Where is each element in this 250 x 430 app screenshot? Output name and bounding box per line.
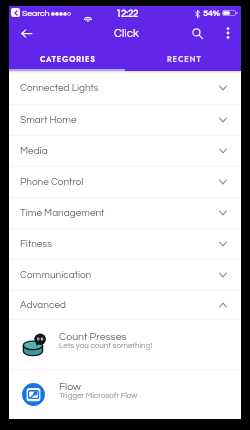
button[interactable]: Media xyxy=(9,135,241,166)
staticText: Time Management xyxy=(20,208,105,218)
button[interactable]: Advanced xyxy=(9,290,241,319)
staticText: Search xyxy=(22,9,50,18)
staticText: Lets you count something! xyxy=(59,341,153,349)
button[interactable]: Phone Control xyxy=(9,166,241,197)
staticText: RECENT xyxy=(167,54,202,65)
staticText: CATEGORIES xyxy=(40,54,96,65)
staticText: Connected Lights xyxy=(20,83,99,93)
button[interactable]: Back to Search xyxy=(11,8,20,17)
button[interactable]: Navigate up xyxy=(13,20,39,46)
staticText: Phone Control xyxy=(20,177,84,187)
staticText: Advanced xyxy=(20,300,66,310)
staticText: Media xyxy=(20,146,48,156)
button[interactable]: Count Presses xyxy=(9,319,241,369)
button[interactable]: RECENT xyxy=(126,50,242,69)
button[interactable]: Fitness xyxy=(9,228,241,259)
staticText: Count Presses xyxy=(59,331,127,342)
button[interactable]: CATEGORIES xyxy=(10,50,126,69)
button[interactable]: Smart Home xyxy=(9,104,241,135)
staticText: Communication xyxy=(20,270,92,280)
button[interactable]: Time Management xyxy=(9,197,241,228)
button[interactable]: Connected Lights xyxy=(9,71,241,104)
staticText: 54% xyxy=(203,9,220,18)
staticText: Smart Home xyxy=(20,115,77,125)
staticText: Flow xyxy=(59,381,81,392)
staticText: 12:22 xyxy=(116,9,139,18)
staticText: Fitness xyxy=(20,239,53,249)
staticText: Click xyxy=(114,28,139,40)
button[interactable]: Communication xyxy=(9,259,241,290)
staticText: Trigger Microsoft Flow xyxy=(59,391,138,399)
button[interactable]: Flow xyxy=(9,369,241,419)
button[interactable]: More options xyxy=(215,20,241,46)
button[interactable]: Search xyxy=(184,20,210,46)
